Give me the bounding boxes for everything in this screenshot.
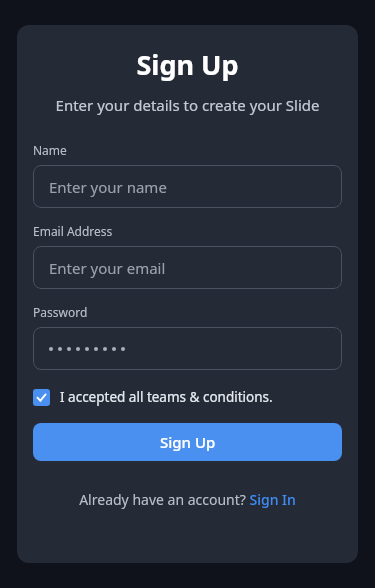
staticText: Name — [33, 142, 67, 158]
button[interactable]: I accepted all teams & conditions. — [33, 388, 342, 406]
button[interactable]: Sign Up — [33, 423, 342, 461]
button[interactable]: Name — [33, 165, 342, 208]
staticText: Already have an account? Sign In — [79, 490, 296, 509]
staticText: Enter your name — [49, 177, 167, 197]
staticText: Enter your email — [49, 258, 166, 278]
button[interactable]: Email Address — [33, 246, 342, 289]
staticText: Enter your details to create your Slide — [33, 95, 342, 115]
button[interactable]: Already have an account? Sign In — [33, 490, 342, 509]
staticText: I accepted all teams & conditions. — [60, 388, 273, 406]
button[interactable]: Password — [33, 327, 342, 370]
staticText: Sign Up — [33, 46, 342, 83]
staticText: Sign Up — [160, 432, 216, 452]
staticText: Password — [33, 304, 88, 320]
staticText: Email Address — [33, 223, 113, 239]
